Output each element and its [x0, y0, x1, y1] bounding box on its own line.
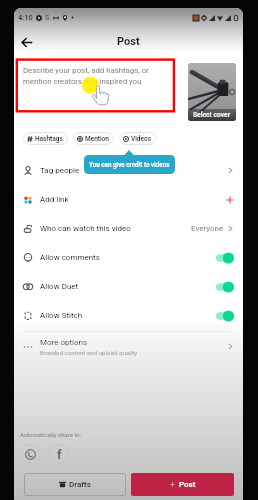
staticText: Post [179, 480, 196, 489]
button[interactable]: Allow comments [14, 243, 243, 272]
button[interactable]: Select cover [188, 63, 236, 121]
button[interactable]: Allow Duet [14, 272, 243, 301]
staticText: Drafts [69, 480, 91, 489]
button[interactable]: Videos [119, 132, 157, 145]
staticText: Select cover [193, 111, 231, 119]
staticText: Describe your post, add hashtags, or [23, 66, 149, 75]
button[interactable]: Hashtags [23, 132, 68, 145]
staticText: mention creators that inspired you [23, 77, 142, 86]
staticText: Allow Duet [40, 282, 79, 291]
button[interactable]: More options [14, 332, 243, 361]
button[interactable]: Tag people [14, 156, 243, 185]
staticText: Automatically share to: [20, 431, 82, 438]
staticText: Add link [40, 195, 69, 204]
button[interactable]: Who can watch this video [14, 214, 243, 243]
button[interactable]: Mention [73, 132, 114, 145]
button[interactable]: Drafts [24, 473, 126, 496]
button[interactable]: Add link [14, 185, 243, 214]
staticText: f [57, 447, 62, 462]
button[interactable]: Post [131, 473, 234, 496]
staticText: Branded content and upload quality [40, 349, 138, 356]
button[interactable]: Allow Stitch [216, 310, 234, 322]
button[interactable]: Allow Duet [216, 281, 234, 293]
staticText: Hashtags [35, 135, 63, 143]
staticText: Videos [131, 135, 152, 143]
staticText: Post [117, 35, 140, 48]
staticText: S [45, 14, 50, 22]
button[interactable]: Allow comments [216, 252, 234, 264]
staticText: Who can watch this video [40, 224, 131, 233]
staticText: Tag people [40, 166, 80, 175]
button[interactable]: WhatsApp [20, 444, 40, 464]
staticText: More options [40, 338, 88, 347]
staticText: You can give credit to videos [89, 161, 170, 168]
staticText: Everyone [191, 224, 224, 233]
button[interactable]: Facebook [49, 444, 69, 464]
staticText: Allow Stitch [40, 311, 83, 320]
staticText: 4:10 [18, 13, 33, 22]
staticText: Allow comments [40, 253, 100, 262]
staticText: Mention [85, 135, 109, 143]
button[interactable]: Back [15, 31, 37, 53]
button[interactable]: Allow Stitch [14, 301, 243, 330]
